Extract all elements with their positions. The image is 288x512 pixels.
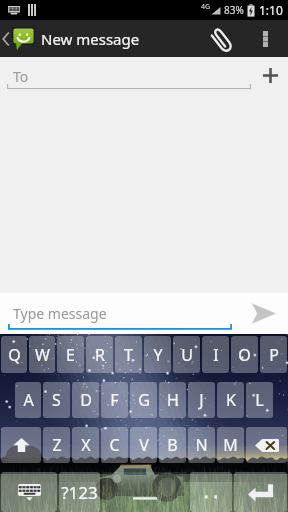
button[interactable]: P [260, 336, 287, 373]
button[interactable]: V [130, 427, 157, 463]
button[interactable]: New message [0, 20, 144, 57]
staticText: Z [52, 434, 62, 456]
staticText: M [223, 434, 238, 456]
button[interactable]: E [57, 336, 84, 373]
staticText: H [167, 389, 179, 411]
staticText: P [269, 344, 279, 366]
button[interactable]: R [86, 336, 113, 373]
button[interactable]: X [72, 427, 99, 463]
button[interactable]: S [43, 382, 70, 418]
staticText: V [139, 434, 149, 456]
button[interactable]: ?123 [59, 472, 100, 512]
button[interactable]: L [246, 382, 273, 418]
button[interactable]: Z [43, 427, 70, 463]
staticText: I [213, 344, 219, 366]
button[interactable]: D [72, 382, 99, 418]
staticText: 1:10 [259, 2, 283, 18]
button[interactable]: U [173, 336, 200, 373]
staticText: B [167, 434, 178, 456]
button[interactable]: Send [238, 293, 288, 334]
button[interactable]: H [159, 382, 186, 418]
staticText: T [124, 344, 133, 366]
staticText: S [52, 389, 61, 411]
staticText: R [95, 344, 105, 366]
staticText: X [81, 434, 91, 456]
staticText: 83% [224, 3, 244, 17]
staticText: N [195, 434, 208, 456]
staticText: F [110, 389, 119, 411]
button[interactable]: Switch keyboard [1, 472, 57, 512]
staticText: A [23, 389, 34, 411]
staticText: To [13, 67, 29, 86]
staticText: O [238, 344, 251, 366]
button[interactable]: Enter [234, 472, 287, 512]
button[interactable]: Shift [1, 427, 41, 463]
staticText: K [226, 389, 236, 411]
button[interactable]: O [231, 336, 258, 373]
button[interactable]: I [202, 336, 229, 373]
button[interactable]: B [159, 427, 186, 463]
staticText: E [66, 344, 75, 366]
staticText: J [199, 389, 204, 411]
button[interactable]: Attach [200, 20, 242, 57]
staticText: Q [8, 344, 21, 366]
button[interactable]: Y [144, 336, 171, 373]
button[interactable]: C [101, 427, 128, 463]
button[interactable]: F [101, 382, 128, 418]
button[interactable]: J [188, 382, 215, 418]
staticText: Y [153, 344, 163, 366]
staticText: D [80, 389, 92, 411]
staticText: U [181, 344, 193, 366]
staticText: L [255, 389, 264, 411]
button[interactable]: K [217, 382, 244, 418]
button[interactable]: G [130, 382, 157, 418]
staticText: 4G [201, 2, 211, 12]
button[interactable]: More options [242, 20, 288, 57]
staticText: Type message [13, 304, 107, 323]
button[interactable]: T [115, 336, 142, 373]
button[interactable]: W [29, 336, 55, 373]
button[interactable]: Add recipient [252, 57, 288, 93]
staticText: C [109, 434, 120, 456]
staticText: New message [41, 29, 140, 49]
staticText: G [138, 389, 150, 411]
button[interactable]: Space [102, 472, 188, 512]
staticText: W [35, 344, 50, 366]
button[interactable]: N [188, 427, 215, 463]
button[interactable]: M [217, 427, 244, 463]
staticText: ?123 [61, 481, 98, 504]
button[interactable]: Comma and period [190, 472, 232, 512]
button[interactable]: Backspace [246, 427, 287, 463]
button[interactable]: Q [1, 336, 27, 373]
button[interactable]: A [15, 382, 41, 418]
